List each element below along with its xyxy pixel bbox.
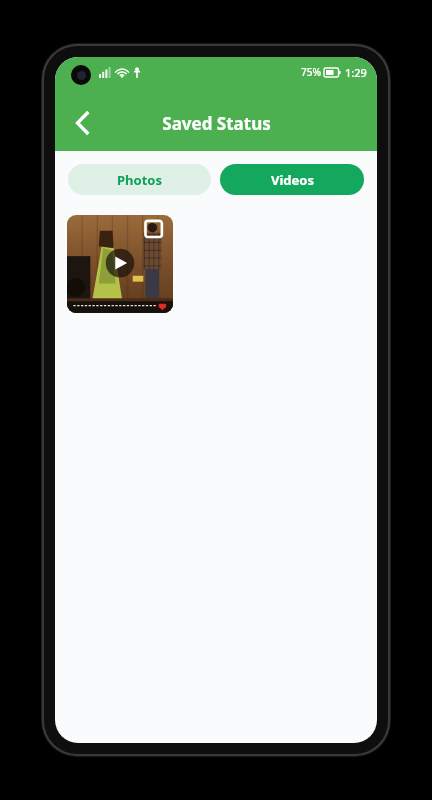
staticText: 75% — [301, 65, 321, 79]
button[interactable]: Photos — [68, 164, 211, 195]
staticText: Photos — [117, 171, 162, 189]
staticText: 1:29 — [345, 65, 367, 80]
button[interactable]: Play saved video — [67, 215, 173, 313]
staticText: Saved Status — [162, 112, 271, 135]
button[interactable]: Videos — [220, 164, 364, 195]
staticText: Videos — [271, 171, 314, 189]
button[interactable]: Back — [63, 103, 103, 143]
